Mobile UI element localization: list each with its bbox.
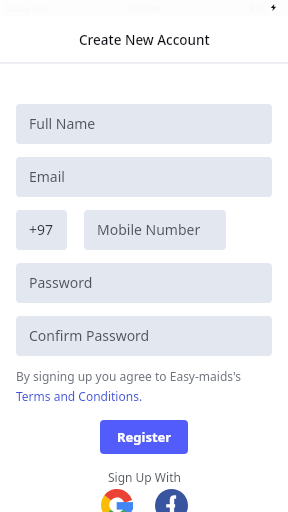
button[interactable]: Confirm Password (16, 316, 272, 356)
button[interactable]: +97 (16, 210, 67, 250)
staticText: Email (29, 167, 65, 186)
staticText: By signing up you agree to Easy-maids's (16, 368, 242, 384)
button[interactable]: Full Name (16, 104, 272, 144)
staticText: Create New Account (79, 31, 210, 49)
button[interactable]: Mobile Number (84, 210, 226, 250)
button[interactable]: Email (16, 157, 272, 197)
staticText: Confirm Password (29, 326, 150, 345)
staticText: Password (29, 273, 93, 292)
button[interactable]: Register (100, 420, 188, 454)
button[interactable]: Terms and Conditions. (16, 388, 143, 404)
staticText: Mobile Number (97, 220, 201, 239)
button[interactable]: Sign up with Facebook (155, 489, 188, 512)
staticText: Sign Up With (108, 469, 181, 485)
staticText: +97 (29, 220, 54, 239)
staticText: Register (117, 428, 172, 446)
button[interactable]: Password (16, 263, 272, 303)
button[interactable]: Sign up with Google (101, 489, 133, 512)
staticText: Full Name (29, 114, 96, 133)
